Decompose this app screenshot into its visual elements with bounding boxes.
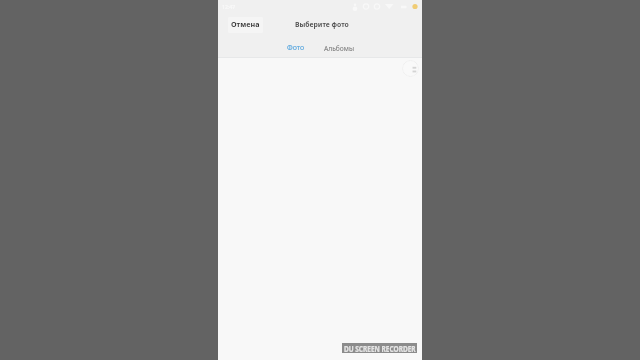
button[interactable]: Фото — [281, 39, 311, 57]
staticText: DU SCREEN RECORDER — [344, 342, 416, 354]
staticText: Выберите фото — [295, 20, 349, 29]
button[interactable]: Screen recorder — [402, 60, 419, 77]
staticText: Альбомы — [324, 44, 355, 53]
staticText: Фото — [287, 43, 305, 53]
button[interactable]: Отмена — [228, 17, 263, 33]
button[interactable]: Альбомы — [318, 40, 361, 57]
staticText: Отмена — [231, 19, 260, 29]
